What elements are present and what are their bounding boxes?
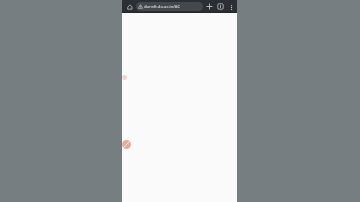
button[interactable]: New tab	[204, 1, 215, 12]
staticText: dunsft.du.ac.in/AC	[144, 4, 181, 10]
button[interactable]: dunsft.du.ac.in/AC	[136, 2, 203, 11]
button[interactable]: Home	[124, 1, 135, 12]
button[interactable]: Switch tabs	[215, 1, 226, 12]
button[interactable]: More options	[226, 2, 236, 12]
